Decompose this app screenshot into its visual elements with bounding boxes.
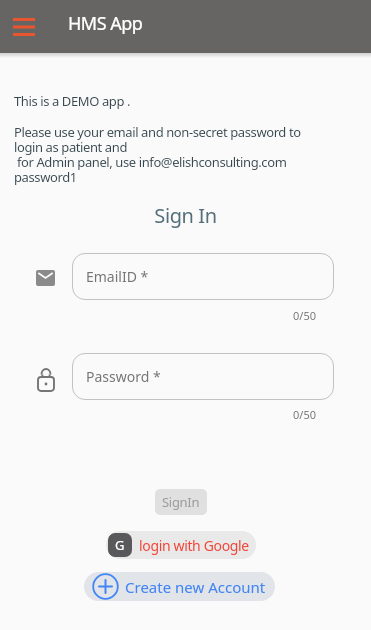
button[interactable] bbox=[36, 270, 55, 286]
button[interactable] bbox=[37, 368, 55, 392]
staticText: Password * bbox=[86, 367, 161, 386]
staticText: 0/50 bbox=[293, 308, 316, 323]
staticText: 0/50 bbox=[293, 407, 316, 422]
staticText: Please use your email and non-secret pas… bbox=[14, 123, 301, 186]
staticText: login with Google bbox=[139, 536, 249, 555]
staticText: Sign In bbox=[0, 202, 371, 229]
button[interactable] bbox=[4, 7, 44, 47]
staticText: EmailID * bbox=[86, 267, 149, 286]
staticText: This is a DEMO app . bbox=[14, 92, 131, 110]
button[interactable]: EmailID * bbox=[72, 253, 334, 300]
staticText: Create new Account bbox=[125, 577, 266, 597]
button[interactable]: Create new Account bbox=[84, 572, 275, 601]
button[interactable]: Password * bbox=[72, 353, 334, 400]
staticText: G bbox=[115, 536, 125, 554]
staticText: HMS App bbox=[68, 11, 143, 36]
button[interactable]: G bbox=[106, 531, 256, 559]
button[interactable]: SignIn bbox=[155, 489, 207, 515]
staticText: SignIn bbox=[162, 493, 200, 511]
